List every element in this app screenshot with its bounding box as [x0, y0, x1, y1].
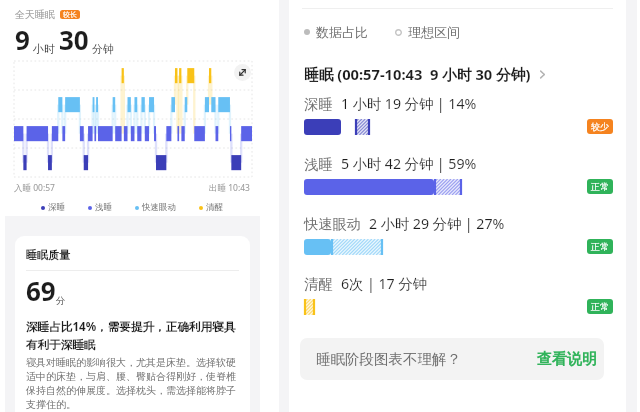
- staticText: 正常: [591, 301, 609, 312]
- staticText: 69: [26, 273, 56, 308]
- staticText: 30: [59, 22, 89, 57]
- staticText: 9: [15, 22, 30, 57]
- staticText: 分: [56, 295, 66, 307]
- staticText: 6次 | 17 分钟: [341, 274, 427, 293]
- staticText: 查看说明: [537, 350, 597, 369]
- staticText: 寝具对睡眠的影响很大，尤其是床垫。选择软硬适中的床垫，与肩、腰、臀贴合得刚好，使…: [26, 356, 239, 411]
- staticText: 正常: [591, 241, 609, 252]
- staticText: 较长: [63, 10, 77, 19]
- staticText: 分钟: [92, 42, 114, 56]
- staticText: 2 小时 29 分钟 | 27%: [369, 214, 505, 233]
- staticText: 深睡: [48, 202, 65, 213]
- staticText: 浅睡: [95, 202, 112, 213]
- staticText: 全天睡眠: [15, 8, 55, 21]
- staticText: 小时: [33, 42, 55, 56]
- button[interactable]: 睡眠阶段图表不理解？: [300, 338, 604, 380]
- staticText: 清醒: [206, 202, 223, 213]
- staticText: 睡眠阶段图表不理解？: [316, 350, 461, 368]
- staticText: 较少: [591, 121, 609, 132]
- staticText: 快速眼动: [304, 215, 361, 233]
- staticText: 正常: [591, 181, 609, 192]
- staticText: 入睡 00:57: [14, 182, 55, 194]
- staticText: 出睡 10:43: [209, 182, 250, 194]
- button[interactable]: 睡眠 (00:57-10:43 9 小时 30 分钟): [304, 64, 549, 84]
- button[interactable]: Expand chart: [234, 64, 251, 81]
- staticText: 睡眠质量: [26, 248, 70, 262]
- staticText: 浅睡: [304, 155, 333, 173]
- staticText: 深睡占比14%，需要提升，正确利用寝具有利于深睡眠: [26, 319, 239, 352]
- staticText: 理想区间: [408, 24, 460, 40]
- staticText: 1 小时 19 分钟 | 14%: [341, 94, 477, 113]
- staticText: 睡眠 (00:57-10:43 9 小时 30 分钟): [304, 64, 531, 84]
- staticText: 清醒: [304, 275, 333, 293]
- staticText: 深睡: [304, 95, 333, 113]
- staticText: 快速眼动: [142, 202, 176, 213]
- staticText: 5 小时 42 分钟 | 59%: [341, 154, 477, 173]
- staticText: 数据占比: [316, 24, 368, 40]
